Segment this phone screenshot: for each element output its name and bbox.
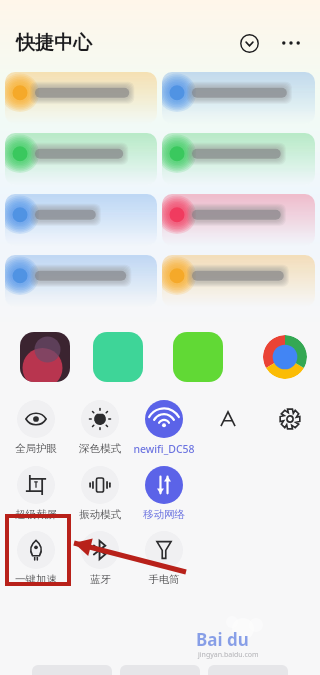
staticText: jingyan.baidu.com <box>198 650 259 660</box>
button[interactable]: 更多 <box>276 28 306 58</box>
button[interactable]: 微信 <box>93 332 143 382</box>
button[interactable]: 移动网络 <box>132 466 196 521</box>
button[interactable] <box>5 255 157 307</box>
button[interactable]: Chrome <box>263 335 307 379</box>
button[interactable] <box>260 400 320 438</box>
staticText: 深色模式 <box>79 442 121 455</box>
staticText: 移动网络 <box>143 508 185 521</box>
button[interactable] <box>5 194 157 246</box>
button[interactable]: 应用 <box>173 332 223 382</box>
button[interactable]: 振动模式 <box>68 466 132 521</box>
button[interactable]: newifi_DC58 <box>132 400 196 456</box>
button[interactable] <box>5 72 157 124</box>
staticText: newifi_DC58 <box>133 442 195 456</box>
button[interactable] <box>162 72 315 124</box>
button[interactable] <box>162 255 315 307</box>
button[interactable]: 超级截屏 <box>4 466 68 521</box>
staticText: Bai du <box>196 628 249 651</box>
button[interactable]: 展开 <box>234 28 264 58</box>
staticText: 快捷中心 <box>16 31 92 55</box>
staticText: 振动模式 <box>79 508 121 521</box>
button[interactable]: 应用 <box>20 332 70 382</box>
staticText: 手电筒 <box>148 573 180 586</box>
button[interactable]: 深色模式 <box>68 400 132 455</box>
staticText: 超级截屏 <box>15 508 57 521</box>
button[interactable]: 一键加速 <box>4 531 68 586</box>
button[interactable]: 手电筒 <box>132 531 196 586</box>
button[interactable] <box>5 133 157 185</box>
staticText: 蓝牙 <box>90 573 111 586</box>
button[interactable] <box>162 194 315 246</box>
staticText: 一键加速 <box>15 573 57 586</box>
button[interactable]: 蓝牙 <box>68 531 132 586</box>
button[interactable] <box>162 133 315 185</box>
button[interactable] <box>196 400 260 438</box>
button[interactable]: 全局护眼 <box>4 400 68 455</box>
staticText: 全局护眼 <box>15 442 57 455</box>
